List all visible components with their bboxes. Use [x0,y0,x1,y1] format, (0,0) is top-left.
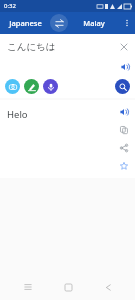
button[interactable]: Search [115,79,130,94]
staticText: Helo [7,108,28,121]
button[interactable]: Save translation [115,157,133,175]
button[interactable]: Swap languages [50,14,68,32]
button[interactable]: Copy translation [115,121,133,139]
button[interactable]: こんにちは [0,34,113,60]
button[interactable]: Home [53,274,83,300]
button[interactable]: Helo [0,100,113,178]
staticText: こんにちは [7,41,56,53]
button[interactable]: Listen to source text [115,60,135,74]
staticText: Japanese [9,18,42,28]
staticText: Malay [83,18,105,28]
button[interactable]: Handwriting [24,79,39,94]
button[interactable]: Camera translate [5,79,20,94]
button[interactable]: Recent apps [13,274,43,300]
button[interactable]: Malay [68,12,119,34]
button[interactable]: Share translation [115,139,133,157]
button[interactable]: Listen to translation [115,103,133,121]
staticText: 0:32 [4,2,16,10]
button[interactable]: More options [119,12,135,34]
button[interactable]: Voice input [43,79,58,94]
button[interactable]: Clear text [113,36,135,58]
button[interactable]: Japanese [0,12,50,34]
button[interactable]: Back [93,274,123,300]
